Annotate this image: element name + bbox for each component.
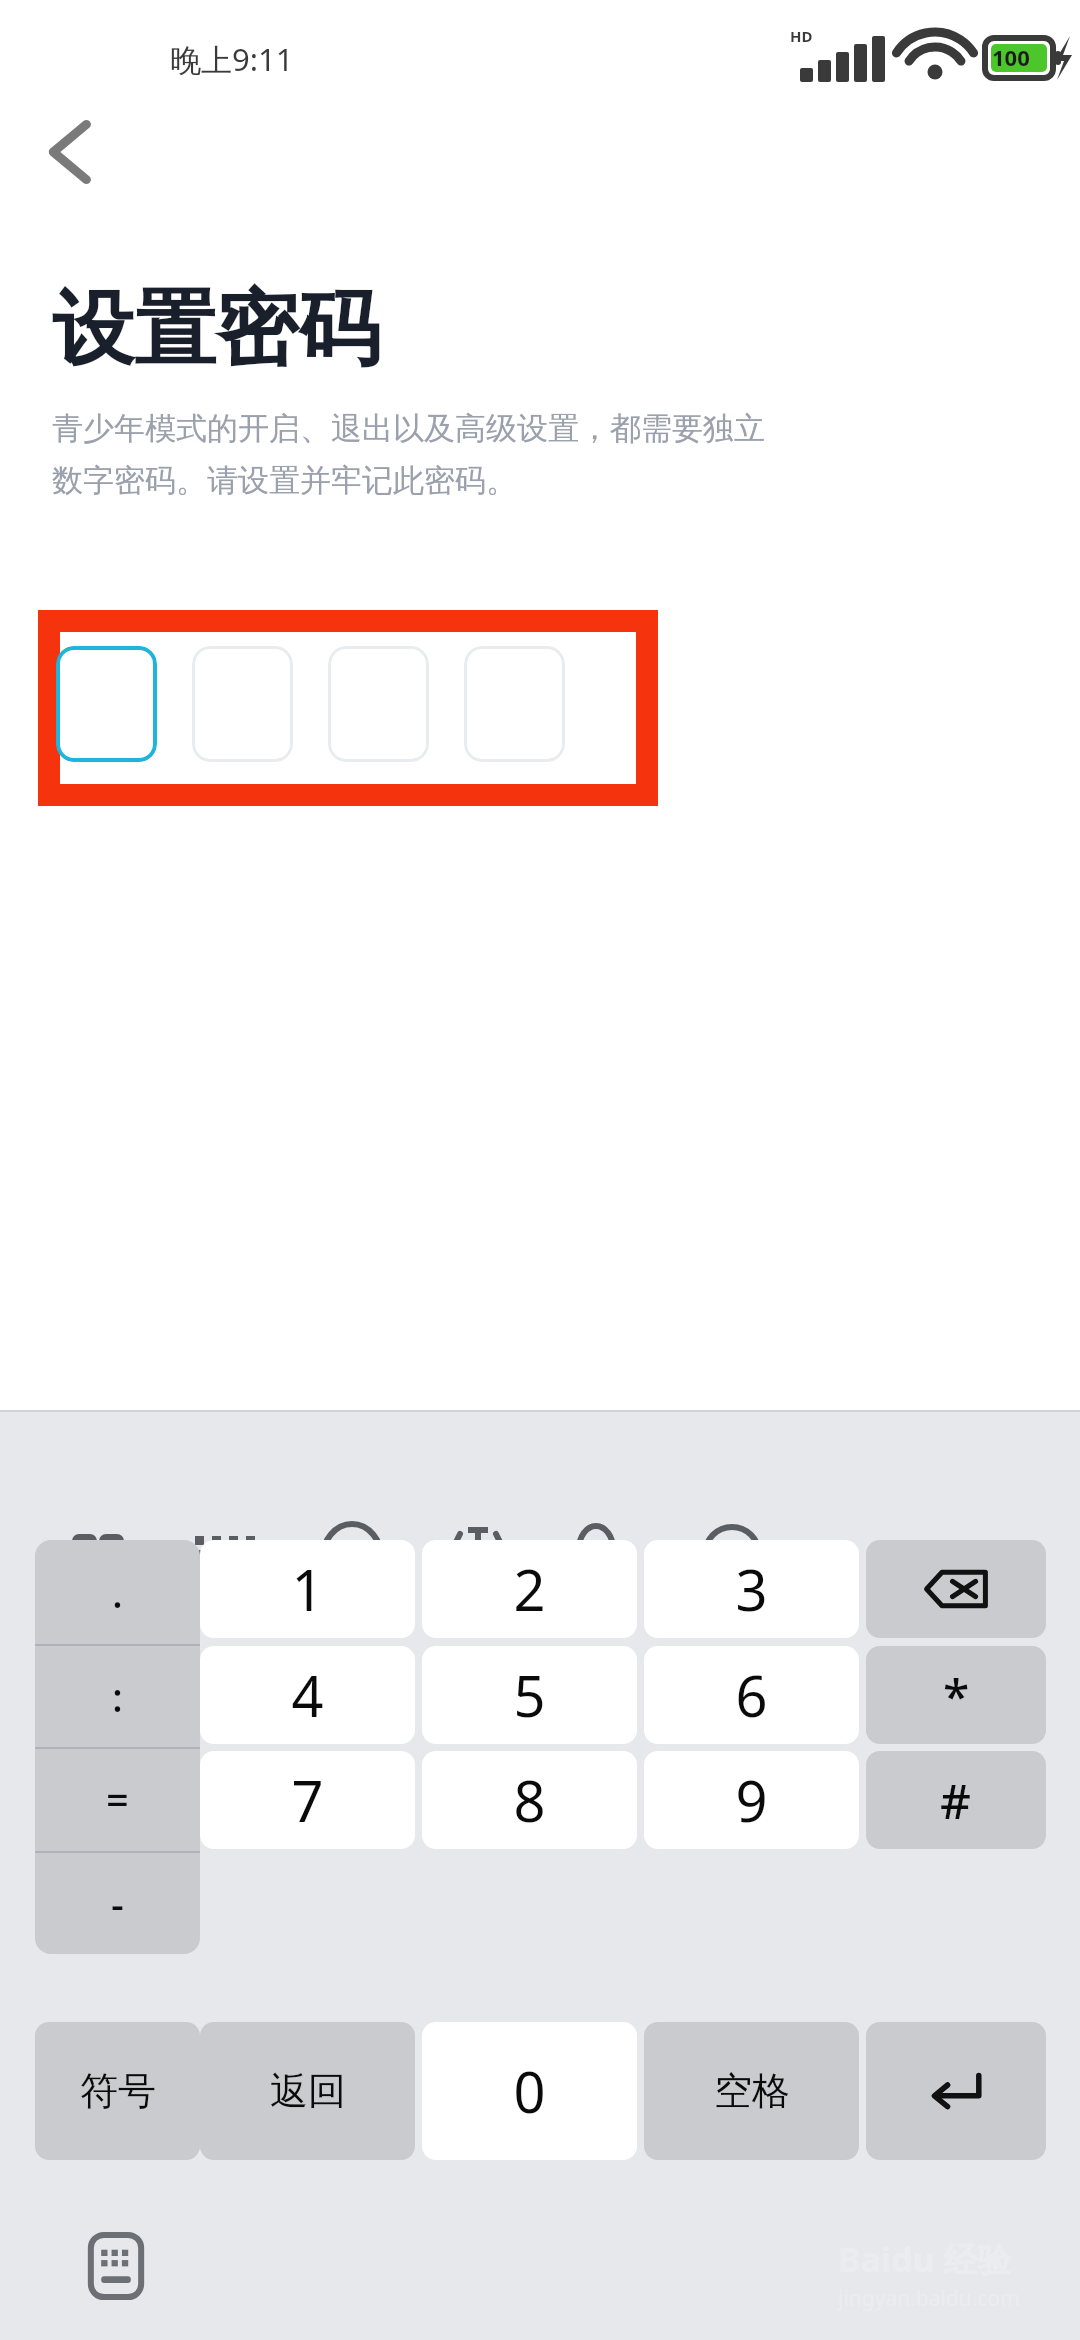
- staticText: 4: [291, 1657, 324, 1733]
- staticText: =: [106, 1772, 129, 1826]
- button[interactable]: Keyboard: [180, 1510, 270, 1600]
- button[interactable]: 6: [644, 1646, 859, 1744]
- button[interactable]: 4: [200, 1646, 415, 1744]
- staticText: .: [112, 1565, 123, 1619]
- staticText: 设置密码: [52, 278, 380, 381]
- button[interactable]: 7: [200, 1751, 415, 1849]
- staticText: HD: [790, 26, 813, 46]
- button[interactable]: Panels: [53, 1510, 143, 1600]
- button[interactable]: :: [35, 1644, 200, 1748]
- button[interactable]: PIN digit 1: [56, 646, 157, 762]
- staticText: #: [940, 1768, 972, 1833]
- button[interactable]: 符号: [35, 2022, 200, 2160]
- button[interactable]: -: [35, 1851, 200, 1954]
- staticText: 6: [735, 1657, 768, 1733]
- button[interactable]: Text cursor: [433, 1510, 523, 1600]
- button[interactable]: 返回: [200, 2022, 415, 2160]
- button[interactable]: PIN digit 3: [328, 646, 429, 762]
- button[interactable]: 5: [422, 1646, 637, 1744]
- staticText: 晚上9:11: [170, 38, 294, 80]
- button[interactable]: Clipboard: [560, 1510, 650, 1600]
- button[interactable]: Switch keyboard: [68, 2218, 164, 2314]
- staticText: 0: [513, 2053, 546, 2129]
- button[interactable]: Enter: [866, 2022, 1046, 2160]
- button[interactable]: .: [35, 1540, 200, 1644]
- button[interactable]: Delete: [866, 1540, 1046, 1638]
- button[interactable]: 8: [422, 1751, 637, 1849]
- staticText: 符号: [80, 2067, 156, 2115]
- button[interactable]: =: [35, 1747, 200, 1851]
- button[interactable]: Search: [687, 1510, 777, 1600]
- staticText: 8: [513, 1762, 546, 1838]
- staticText: *: [943, 1663, 970, 1728]
- staticText: 空格: [714, 2067, 790, 2115]
- staticText: -: [111, 1876, 124, 1930]
- button[interactable]: 0: [422, 2022, 637, 2160]
- button[interactable]: 空格: [644, 2022, 859, 2160]
- staticText: 100: [992, 42, 1030, 72]
- button[interactable]: PIN digit 4: [464, 646, 565, 762]
- button[interactable]: 3: [644, 1540, 859, 1638]
- button[interactable]: Hide keyboard: [940, 1510, 1030, 1600]
- staticText: 2: [513, 1551, 546, 1627]
- button[interactable]: Back: [22, 106, 114, 198]
- staticText: 5: [513, 1657, 546, 1733]
- staticText: 3: [735, 1551, 768, 1627]
- staticText: 9: [735, 1762, 768, 1838]
- button[interactable]: #: [866, 1751, 1046, 1849]
- button[interactable]: *: [866, 1646, 1046, 1744]
- button[interactable]: 2: [422, 1540, 637, 1638]
- button[interactable]: PIN digit 2: [192, 646, 293, 762]
- button[interactable]: Emoji: [307, 1510, 397, 1600]
- staticText: 1: [291, 1551, 324, 1627]
- button[interactable]: 1: [200, 1540, 415, 1638]
- staticText: 返回: [270, 2067, 346, 2115]
- staticText: :: [112, 1669, 123, 1723]
- button[interactable]: 9: [644, 1751, 859, 1849]
- staticText: 青少年模式的开启、退出以及高级设置，都需要独立 数字密码。请设置并牢记此密码。: [52, 409, 765, 500]
- staticText: 7: [291, 1762, 324, 1838]
